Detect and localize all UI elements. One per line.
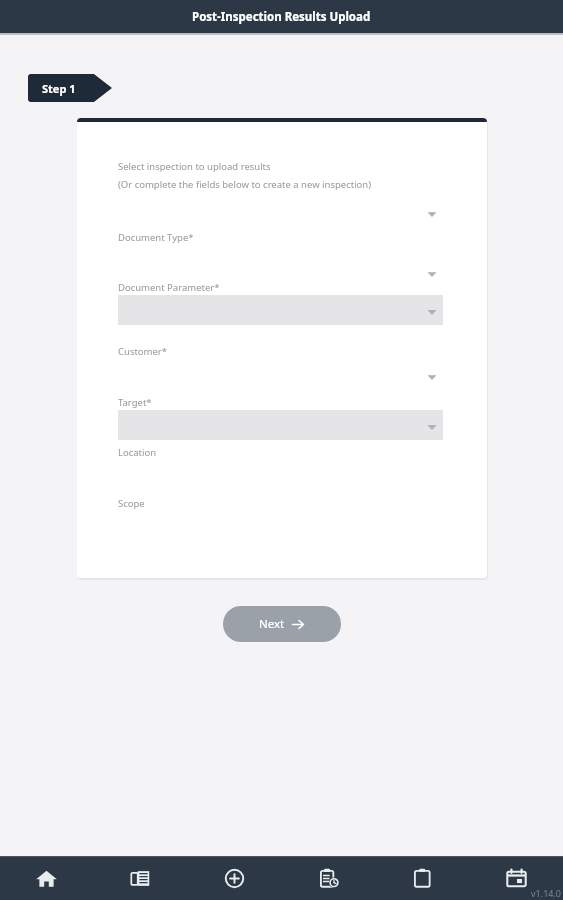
staticText: v1.14.0 <box>531 887 561 899</box>
button[interactable]: Reports <box>375 856 469 900</box>
staticText: Customer* <box>118 345 168 358</box>
button[interactable]: Dropdown <box>118 359 443 389</box>
staticText: Post-Inspection Results Upload <box>192 9 371 25</box>
staticText: Location <box>118 446 157 459</box>
button[interactable]: Inspections <box>281 856 375 900</box>
staticText: Step 1 <box>42 81 76 96</box>
staticText: Document Type* <box>118 231 194 244</box>
button[interactable]: Next <box>223 606 341 642</box>
staticText: Scope <box>118 497 145 510</box>
button[interactable]: Documents <box>93 856 187 900</box>
staticText: Next <box>259 616 285 632</box>
button[interactable]: Home <box>0 856 93 900</box>
button[interactable]: Calendar <box>469 856 563 900</box>
staticText: (Or complete the fields below to create … <box>118 178 372 191</box>
button[interactable]: Add new <box>187 856 281 900</box>
button[interactable]: Dropdown <box>118 256 443 286</box>
button[interactable]: Step 1 <box>28 74 112 102</box>
button[interactable]: Dropdown <box>118 196 443 226</box>
staticText: Select inspection to upload results <box>118 160 271 173</box>
staticText: Document Parameter* <box>118 281 220 294</box>
staticText: Target* <box>118 396 152 409</box>
